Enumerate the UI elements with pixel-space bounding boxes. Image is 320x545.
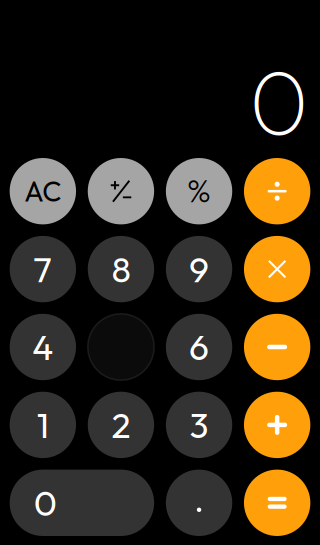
staticText: 6	[189, 325, 209, 369]
button[interactable]: Plus	[244, 392, 310, 458]
button[interactable]: 5	[88, 314, 154, 380]
button[interactable]: 6	[166, 314, 232, 380]
staticText: 7	[33, 247, 52, 291]
button[interactable]: 7	[10, 236, 76, 302]
staticText: 4	[32, 325, 53, 369]
button[interactable]: 3	[166, 392, 232, 458]
button[interactable]: 2	[88, 392, 154, 458]
button[interactable]: Plus minus	[88, 158, 154, 224]
staticText: 9	[189, 247, 209, 291]
button[interactable]: 8	[88, 236, 154, 302]
button[interactable]: 0	[10, 470, 154, 536]
button[interactable]: Divide	[244, 158, 310, 224]
staticText: AC	[24, 174, 61, 209]
staticText: 8	[111, 247, 130, 291]
staticText: %	[187, 170, 211, 212]
staticText: 0	[34, 480, 57, 525]
button[interactable]: Decimal point	[166, 470, 232, 536]
button[interactable]: Equals	[244, 470, 310, 536]
button[interactable]: 9	[166, 236, 232, 302]
button[interactable]: Minus	[244, 314, 310, 380]
button[interactable]: 1	[10, 392, 76, 458]
staticText: 1	[37, 403, 49, 447]
staticText: 3	[190, 403, 209, 447]
button[interactable]: %	[166, 158, 232, 224]
button[interactable]: AC	[10, 158, 76, 224]
staticText: 0	[249, 44, 309, 158]
button[interactable]: 4	[10, 314, 76, 380]
button[interactable]: Multiply	[244, 236, 310, 302]
staticText: 2	[111, 403, 130, 447]
